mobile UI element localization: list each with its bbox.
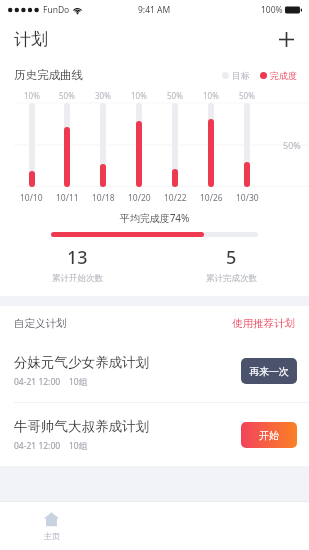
staticText: 10/30: [236, 192, 259, 204]
staticText: 10%: [131, 90, 147, 101]
staticText: 10组: [69, 376, 88, 388]
staticText: 9:41 AM: [138, 4, 171, 16]
button[interactable]: 使用推荐计划: [232, 317, 295, 330]
button[interactable]: 开始: [241, 422, 297, 448]
staticText: 目标: [232, 70, 250, 81]
staticText: FunDo: [43, 4, 70, 16]
staticText: 100%: [261, 4, 283, 16]
button[interactable]: Add plan: [273, 26, 299, 52]
staticText: 完成度: [270, 70, 297, 81]
staticText: 10/10: [20, 192, 43, 204]
staticText: 使用推荐计划: [232, 317, 295, 330]
staticText: 分妹元气少女养成计划: [14, 354, 149, 371]
staticText: 再来一次: [249, 365, 289, 378]
staticText: 牛哥帅气大叔养成计划: [14, 418, 149, 435]
button[interactable]: 牛哥帅气大叔养成计划: [0, 403, 309, 466]
staticText: 10/22: [164, 192, 187, 204]
staticText: 10/11: [56, 192, 79, 204]
staticText: 自定义计划: [14, 317, 67, 330]
staticText: 平均完成度74%: [0, 211, 309, 225]
other: Home: [43, 511, 60, 528]
staticText: 累计完成次数: [206, 273, 257, 284]
staticText: 04-21 12:00: [14, 440, 61, 452]
button[interactable]: Home: [0, 502, 103, 550]
staticText: 历史完成曲线: [14, 68, 83, 82]
staticText: 10%: [203, 90, 219, 101]
staticText: 计划: [14, 29, 48, 50]
staticText: 10组: [69, 440, 88, 452]
staticText: 04-21 12:00: [14, 376, 61, 388]
staticText: 主页: [44, 531, 60, 541]
staticText: 10/20: [128, 192, 151, 204]
staticText: 10/18: [92, 192, 115, 204]
staticText: 50%: [59, 90, 75, 101]
staticText: 30%: [95, 90, 111, 101]
staticText: 5: [226, 245, 237, 270]
staticText: 50%: [283, 139, 301, 151]
staticText: 10/26: [200, 192, 223, 204]
staticText: 50%: [239, 90, 255, 101]
button[interactable]: 再来一次: [241, 358, 297, 384]
staticText: 10%: [24, 90, 40, 101]
staticText: 50%: [167, 90, 183, 101]
staticText: 13: [67, 245, 88, 270]
staticText: 累计开始次数: [52, 273, 103, 284]
button[interactable]: 分妹元气少女养成计划: [0, 339, 309, 402]
staticText: 开始: [259, 429, 279, 442]
